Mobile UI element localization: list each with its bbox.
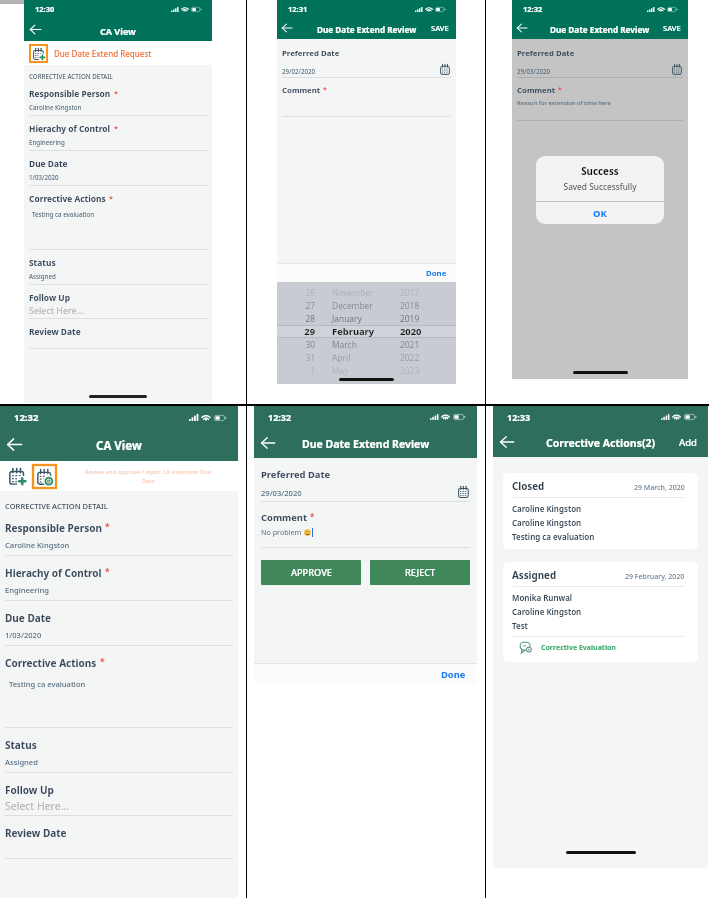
staticText: Review and approve / reject CA extension… (62, 468, 234, 484)
staticText: Reason for extension of time here (517, 99, 611, 107)
staticText: March (332, 339, 400, 350)
staticText: SAVE (663, 23, 681, 33)
staticText: Testing ca evaluation (512, 531, 595, 542)
button[interactable]: Pick date (672, 64, 683, 75)
button[interactable]: Add extension request (7, 466, 27, 486)
staticText: 29/03/2020 (517, 67, 672, 75)
button[interactable]: Back (260, 435, 276, 451)
staticText: Saved Successfully (536, 181, 664, 192)
staticText: * (558, 85, 562, 94)
staticText: * (105, 566, 110, 578)
button[interactable]: APPROVE (261, 560, 361, 585)
button[interactable]: Back (29, 23, 42, 36)
staticText: * (105, 521, 110, 533)
button[interactable]: Responsible Person (0, 511, 238, 556)
staticText: Responsible Person (29, 88, 111, 99)
staticText: 30 (277, 339, 315, 350)
staticText: 12:32 (268, 411, 292, 423)
staticText: Select Here... (29, 304, 84, 316)
button[interactable]: Closed (503, 473, 698, 549)
staticText: February (332, 325, 400, 338)
button[interactable]: Back (281, 22, 293, 34)
staticText: Due Date Extend Review (317, 24, 417, 35)
staticText: APPROVE (291, 566, 332, 579)
button[interactable]: Hierachy of Control (0, 556, 238, 601)
staticText: Due Date Extend Review (550, 24, 650, 35)
staticText: Hierachy of Control (5, 566, 102, 580)
button[interactable]: Back (499, 434, 515, 450)
button[interactable]: Due Date (0, 601, 238, 646)
staticText: Caroline Kingston (512, 503, 582, 514)
button[interactable]: 27 (277, 299, 456, 312)
staticText: 2022 (400, 352, 456, 363)
staticText: 12:33 (507, 411, 531, 423)
button[interactable]: Add (674, 434, 708, 451)
button[interactable]: OK (536, 202, 664, 224)
staticText: 29 March, 2020 (634, 483, 685, 493)
staticText: Due Date Extend Review (302, 437, 430, 451)
button[interactable]: Hierachy of Control (24, 116, 212, 151)
staticText: 2017 (400, 287, 456, 298)
staticText: 26 (277, 287, 315, 298)
staticText: 31 (277, 352, 315, 363)
staticText: Test (512, 620, 528, 631)
button[interactable]: Responsible Person (24, 80, 212, 116)
staticText: Due Date (29, 158, 68, 169)
staticText: Done (441, 668, 466, 681)
staticText: Comment (517, 85, 556, 96)
staticText: May (332, 365, 400, 376)
button[interactable]: Due Date (24, 151, 212, 186)
button[interactable]: Status (0, 728, 238, 773)
staticText: Caroline Kingston (5, 540, 70, 550)
staticText: * (114, 88, 118, 98)
staticText: Success (536, 165, 664, 178)
staticText: 12:32 (523, 4, 543, 14)
staticText: Engineering (29, 138, 65, 146)
staticText: Caroline Kingston (29, 103, 82, 111)
button[interactable]: Done (430, 666, 477, 683)
staticText: Closed (512, 480, 634, 493)
button[interactable]: 30 (277, 338, 456, 351)
staticText: Testing ca evaluation (9, 679, 86, 689)
button[interactable]: Due Date Extend Request (24, 41, 212, 65)
staticText: Corrective Actions (5, 656, 97, 670)
staticText: Due Date (5, 611, 52, 625)
staticText: Corrective Evaluation (541, 643, 616, 653)
staticText: 2023 (400, 365, 456, 376)
button[interactable]: Back (516, 22, 528, 34)
button[interactable]: Pick date (458, 486, 470, 498)
staticText: November (332, 287, 400, 298)
staticText: 29/02/2020 (282, 67, 440, 75)
staticText: * (323, 85, 327, 94)
staticText: Status (29, 257, 56, 268)
staticText: Add (679, 436, 698, 449)
staticText: April (332, 352, 400, 363)
button[interactable]: Corrective Evaluation (512, 641, 616, 654)
button[interactable]: REJECT (370, 560, 470, 585)
staticText: 12:32 (14, 411, 39, 424)
button[interactable]: SAVE (659, 21, 688, 35)
button[interactable]: 1 (277, 364, 456, 377)
staticText: CORRECTIVE ACTION DETAIL (29, 72, 113, 80)
button[interactable]: Status (24, 250, 212, 285)
button[interactable]: Back (6, 436, 23, 453)
staticText: Preferred Date (282, 48, 340, 59)
staticText: 29 February, 2020 (625, 572, 685, 582)
button[interactable]: Assigned (503, 562, 698, 662)
staticText: Preferred Date (517, 48, 575, 59)
staticText: 2021 (400, 339, 456, 350)
button[interactable]: 29 (277, 325, 456, 338)
button[interactable]: Review extension request (33, 465, 56, 488)
button[interactable]: Pick date (440, 64, 451, 75)
staticText: Due Date Extend Request (54, 48, 152, 59)
button[interactable]: 26 (277, 286, 456, 299)
button[interactable]: 28 (277, 312, 456, 325)
button[interactable]: 31 (277, 351, 456, 364)
staticText: * (114, 123, 118, 133)
button[interactable]: SAVE (427, 21, 456, 35)
button[interactable]: Done (417, 266, 456, 281)
staticText: Preferred Date (261, 468, 331, 481)
staticText: 2020 (400, 325, 456, 338)
staticText: Engineering (5, 585, 49, 595)
